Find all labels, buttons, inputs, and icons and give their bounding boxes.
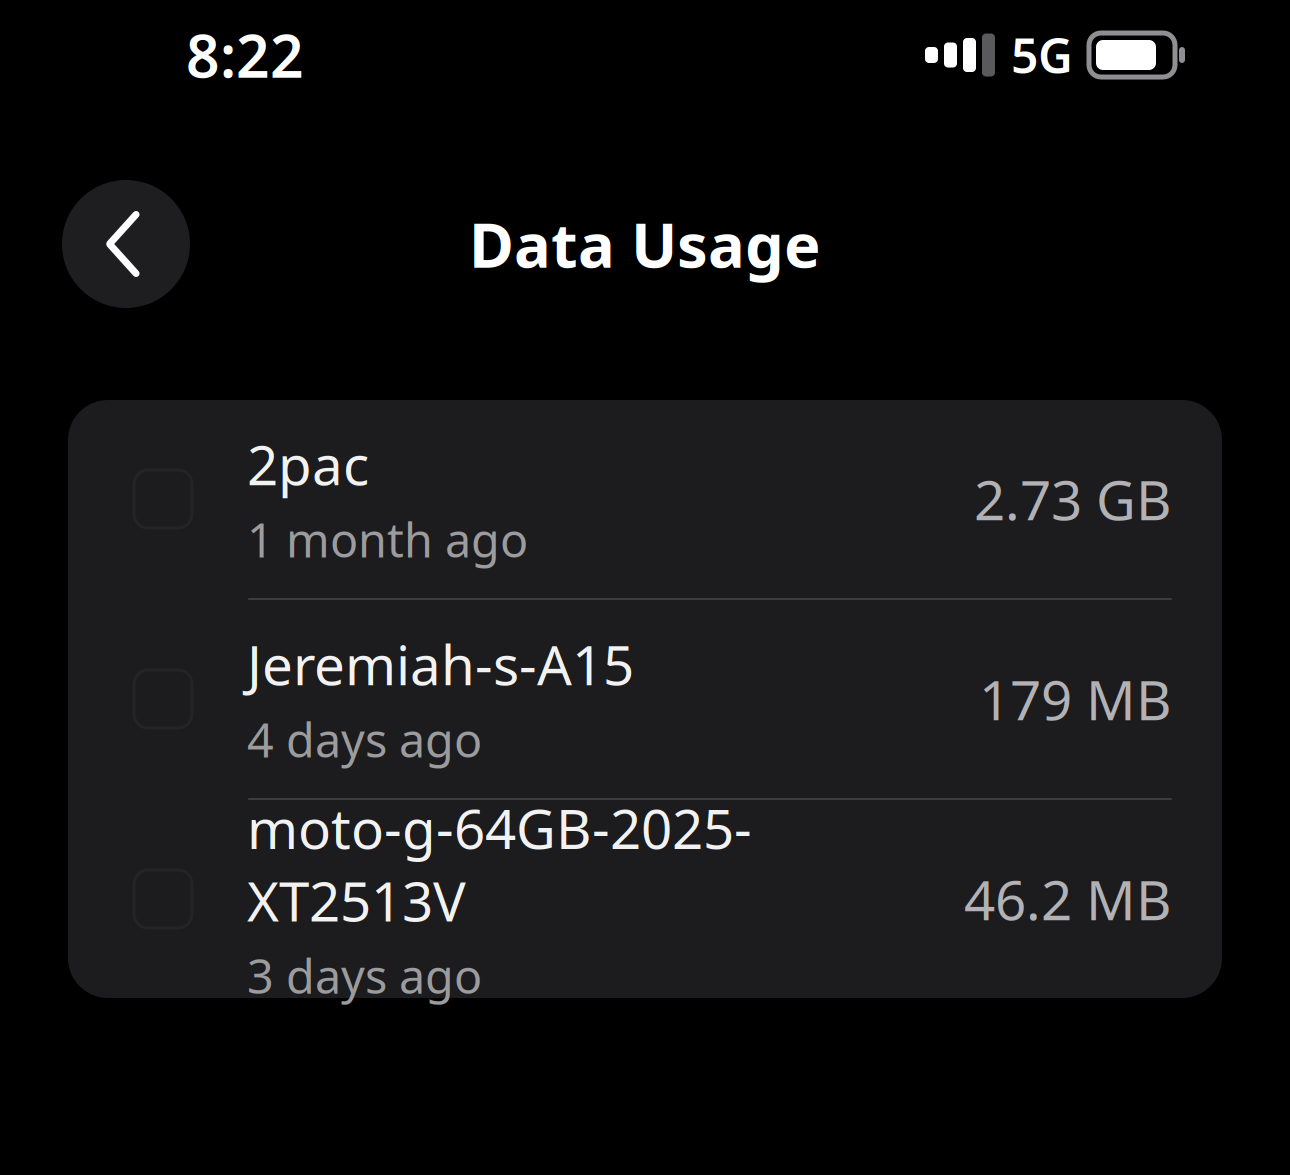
button[interactable]: Back <box>62 180 190 308</box>
staticText: moto-g-64GB-2025-XT2513V <box>247 791 752 937</box>
staticText: Jeremiah-s-A15 <box>247 628 634 700</box>
staticText: Data Usage <box>469 203 821 285</box>
button[interactable]: Jeremiah-s-A15 <box>68 600 1222 798</box>
staticText: 179 MB <box>979 663 1172 735</box>
staticText: 2.73 GB <box>974 463 1172 535</box>
staticText: 4 days ago <box>247 708 482 770</box>
button[interactable]: 2pac <box>68 400 1222 598</box>
staticText: 8:22 <box>186 16 304 94</box>
staticText: 46.2 MB <box>964 863 1172 935</box>
staticText: 3 days ago <box>247 945 482 1007</box>
staticText: 5G <box>1011 23 1073 87</box>
staticText: 2pac <box>247 428 369 500</box>
staticText: 1 month ago <box>247 508 528 570</box>
button[interactable]: moto-g-64GB-2025-XT2513V <box>68 800 1222 998</box>
